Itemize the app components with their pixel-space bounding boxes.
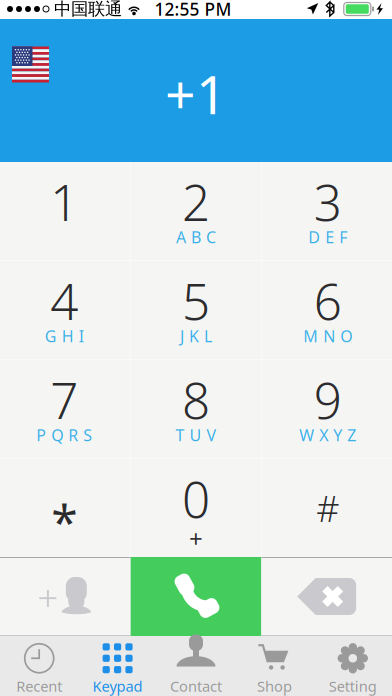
staticText: 1	[50, 169, 78, 234]
button[interactable]: Recent	[0, 636, 78, 696]
staticText: 7	[50, 367, 78, 432]
staticText: Shop	[257, 676, 292, 696]
button[interactable]: #	[262, 459, 392, 557]
staticText: Contact	[170, 676, 222, 696]
staticText: T U V	[175, 424, 216, 446]
button[interactable]: Keypad	[78, 636, 157, 696]
staticText: W X Y Z	[299, 424, 356, 446]
button[interactable]: 1	[0, 162, 130, 260]
button[interactable]: 9	[262, 360, 392, 458]
staticText: D E F	[308, 226, 347, 248]
staticText: Setting	[329, 676, 377, 696]
button[interactable]: 3	[262, 162, 392, 260]
staticText: G H I	[45, 325, 84, 347]
staticText: P Q R S	[36, 424, 92, 446]
button[interactable]: Setting	[314, 636, 392, 696]
staticText: Keypad	[93, 676, 143, 696]
staticText: 9	[314, 367, 342, 432]
staticText: 12:55 PM	[154, 0, 231, 20]
staticText: 0	[182, 466, 210, 531]
button[interactable]: 0	[131, 459, 261, 557]
button[interactable]: 5	[131, 261, 261, 359]
button[interactable]: *	[0, 459, 130, 557]
staticText: Recent	[16, 676, 62, 696]
staticText: 8	[182, 367, 210, 432]
button[interactable]: 4	[0, 261, 130, 359]
staticText: 3	[314, 169, 342, 234]
staticText: J K L	[180, 325, 212, 347]
staticText: *	[51, 489, 77, 553]
button[interactable]: Delete	[261, 557, 392, 636]
button[interactable]: Call	[131, 557, 261, 636]
staticText: 5	[182, 268, 210, 333]
staticText: +1	[165, 58, 227, 129]
button[interactable]: 6	[262, 261, 392, 359]
button[interactable]: 7	[0, 360, 130, 458]
staticText: A B C	[176, 226, 216, 248]
button[interactable]: Add contact	[0, 557, 131, 636]
staticText: 6	[314, 268, 342, 333]
button[interactable]: Shop	[235, 636, 314, 696]
staticText: 2	[182, 169, 210, 234]
button[interactable]: Contact	[157, 636, 235, 696]
button[interactable]: 8	[131, 360, 261, 458]
staticText: M N O	[303, 325, 352, 347]
staticText: 中国联通	[54, 0, 122, 20]
button[interactable]: 2	[131, 162, 261, 260]
staticText: 4	[50, 268, 78, 333]
staticText: #	[316, 484, 339, 532]
staticText: +	[189, 522, 203, 554]
